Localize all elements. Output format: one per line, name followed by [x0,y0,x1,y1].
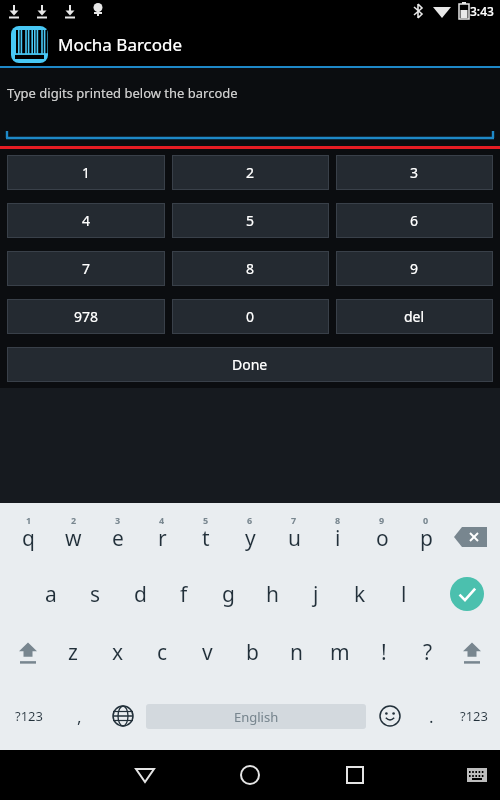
staticText: i [335,524,341,553]
button[interactable]: del [337,300,492,333]
button[interactable]: Back [100,750,190,800]
button[interactable]: x [95,623,140,681]
button[interactable]: 6 [228,503,272,565]
staticText: b [246,638,259,667]
staticText: k [354,580,366,609]
button[interactable]: 3 [96,503,140,565]
button[interactable]: ?123 [0,699,58,733]
staticText: y [245,524,256,553]
button[interactable]: m [318,623,362,681]
button[interactable]: 4 [140,503,184,565]
button[interactable]: ? [406,623,450,681]
button[interactable]: k [338,565,382,623]
button[interactable]: 7 [272,503,316,565]
staticText: 6 [247,514,253,526]
staticText: Done [232,355,268,374]
button[interactable]: Emoji [366,699,414,733]
staticText: Type digits printed below the barcode [7,84,238,102]
button[interactable]: 3 [337,156,492,189]
staticText: o [376,524,389,553]
staticText: . [429,705,434,728]
button[interactable]: s [73,565,118,623]
button[interactable]: . [414,699,448,733]
staticText: 9 [379,514,385,526]
button[interactable]: f [162,565,206,623]
staticText: 4 [159,514,165,526]
button[interactable]: l [382,565,426,623]
staticText: 4 [82,211,91,230]
button[interactable]: English [146,704,366,729]
button[interactable]: c [140,623,185,681]
staticText: t [202,524,210,553]
button[interactable]: b [230,623,274,681]
button[interactable]: 1 [6,503,51,565]
staticText: x [112,638,124,667]
button[interactable]: Shift [8,632,48,672]
button[interactable]: 9 [337,252,492,285]
button[interactable]: Done [8,348,492,381]
staticText: a [45,580,57,609]
staticText: r [158,524,167,553]
staticText: j [313,580,319,609]
staticText: 3 [410,163,419,182]
button[interactable]: 8 [316,503,360,565]
staticText: 6 [410,211,419,230]
staticText: h [266,580,279,609]
button[interactable]: ! [362,623,406,681]
button[interactable]: h [250,565,294,623]
button[interactable]: d [118,565,162,623]
button[interactable]: ?123 [448,699,500,733]
button[interactable]: 7 [8,252,164,285]
button[interactable]: 9 [360,503,404,565]
button[interactable]: 2 [51,503,96,565]
staticText: 5 [246,211,255,230]
button[interactable]: j [294,565,338,623]
staticText: d [134,580,147,609]
button[interactable]: n [274,623,318,681]
staticText: 978 [74,307,99,326]
button[interactable]: 0 [173,300,328,333]
staticText: 5 [203,514,209,526]
button[interactable]: g [206,565,250,623]
staticText: 1 [82,163,91,182]
staticText: ?123 [460,707,488,725]
button[interactable]: v [185,623,230,681]
staticText: ! [381,638,387,667]
button[interactable]: 1 [8,156,164,189]
button[interactable]: a [28,565,73,623]
staticText: ? [423,638,433,667]
staticText: 0 [246,307,255,326]
staticText: z [68,638,78,667]
button[interactable]: 5 [173,204,328,237]
staticText: m [330,638,350,667]
staticText: q [22,524,35,553]
staticText: 1 [26,514,32,526]
staticText: 8 [246,259,255,278]
staticText: , [77,705,82,728]
button[interactable]: 6 [337,204,492,237]
button[interactable]: 4 [8,204,164,237]
button[interactable]: 0 [404,503,448,565]
button[interactable]: z [50,623,95,681]
button[interactable]: Change language [100,699,146,733]
staticText: u [288,524,301,553]
button[interactable]: 8 [173,252,328,285]
button[interactable]: Enter [450,577,484,611]
staticText: English [234,708,279,726]
button[interactable]: , [58,699,100,733]
staticText: 7 [82,259,91,278]
button[interactable]: Home [205,750,295,800]
button[interactable]: Backspace [450,520,490,554]
staticText: p [420,524,433,553]
button[interactable]: Recent apps [310,750,400,800]
other: App icon [11,26,48,63]
button[interactable]: Shift [452,632,492,672]
staticText: v [202,638,213,667]
staticText: 0 [423,514,429,526]
button[interactable]: 2 [173,156,328,189]
button[interactable]: Keyboard [454,750,500,800]
staticText: del [404,307,425,326]
button[interactable]: 5 [184,503,228,565]
button[interactable]: 978 [8,300,164,333]
staticText: Mocha Barcode [58,33,183,56]
